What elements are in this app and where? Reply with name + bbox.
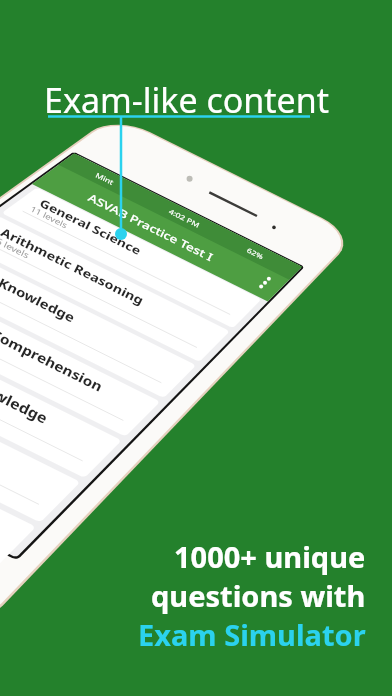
staticText: questions with bbox=[151, 576, 366, 615]
staticText: Exam Simulator bbox=[138, 615, 366, 654]
staticText: Exam-like content bbox=[44, 77, 330, 123]
staticText: 1000+ unique bbox=[174, 537, 366, 576]
